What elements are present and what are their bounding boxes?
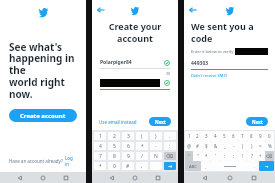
staticText: ! — [242, 153, 244, 159]
button[interactable]: - — [229, 141, 238, 151]
button[interactable]: * — [202, 151, 211, 161]
button[interactable]: Next — [149, 117, 171, 126]
button[interactable]: 5 — [108, 142, 120, 150]
button[interactable]: Back — [96, 5, 106, 15]
button[interactable]: Create account — [9, 109, 77, 122]
button[interactable]: Home — [227, 175, 233, 181]
button[interactable]: : — [164, 142, 176, 150]
button[interactable]: 4 — [211, 131, 220, 141]
button[interactable]: & — [211, 141, 220, 151]
button[interactable]: # — [193, 141, 202, 151]
button[interactable]: , — [136, 162, 148, 170]
button[interactable]: Home — [132, 175, 138, 181]
button[interactable]: Next — [246, 117, 268, 126]
button[interactable]: " — [193, 151, 202, 161]
button[interactable]: 9 — [256, 131, 265, 141]
button[interactable]: . — [164, 132, 176, 140]
button[interactable]: → — [164, 162, 176, 170]
staticText: . — [254, 164, 256, 169]
staticText: _ — [224, 143, 226, 149]
staticText: ) — [251, 143, 253, 149]
staticText: / — [141, 153, 143, 160]
button[interactable]: Recents — [155, 175, 161, 181]
staticText: ; — [233, 153, 235, 159]
button[interactable]: + — [256, 151, 265, 161]
button[interactable]: ( — [238, 141, 247, 151]
staticText: 6 — [127, 143, 130, 150]
staticText: Create account — [20, 112, 66, 120]
button[interactable]: 7 — [94, 152, 106, 160]
button[interactable]: 8 — [247, 131, 256, 141]
button[interactable]: ) — [247, 141, 256, 151]
staticText: 6 — [232, 133, 235, 139]
button[interactable]: 1 — [94, 132, 106, 140]
button[interactable]: Recents — [251, 175, 257, 181]
button[interactable]: ) — [150, 132, 162, 140]
button[interactable]: 1 — [185, 131, 193, 141]
button[interactable]: @ — [185, 141, 193, 151]
button[interactable]: * — [94, 162, 106, 170]
button[interactable]: 3 — [202, 131, 211, 141]
staticText: . — [169, 133, 171, 140]
staticText: 2 — [196, 133, 199, 139]
button[interactable]: 9 — [122, 152, 134, 160]
button[interactable]: = — [256, 141, 265, 151]
button[interactable]: 2 — [193, 131, 202, 141]
staticText: ? — [251, 153, 253, 159]
staticText: ⌃ — [187, 154, 191, 159]
button[interactable]: - — [150, 142, 162, 150]
button[interactable]: ⌫ — [164, 152, 176, 160]
staticText: Next — [155, 119, 166, 125]
button[interactable]: 2 — [108, 132, 120, 140]
button[interactable]: / — [136, 152, 148, 160]
button[interactable]: : — [220, 151, 229, 161]
button[interactable]: 3 — [122, 132, 134, 140]
button[interactable]: 6 — [229, 131, 238, 141]
staticText: % — [268, 143, 272, 149]
button[interactable]: 5 — [220, 131, 229, 141]
button[interactable]: → — [259, 161, 274, 171]
button[interactable]: ( — [136, 132, 148, 140]
staticText: 0 — [113, 163, 116, 170]
button[interactable]: $ — [202, 141, 211, 151]
button[interactable]: Recents — [63, 175, 69, 181]
button[interactable]: 7 — [238, 131, 247, 141]
button[interactable]: 8 — [108, 152, 120, 160]
button[interactable]: % — [265, 141, 274, 151]
button[interactable]: N — [150, 152, 162, 160]
staticText: 3 — [127, 133, 130, 140]
staticText: " — [197, 153, 199, 159]
button[interactable]: Back — [188, 5, 198, 15]
button[interactable]: Use email instead — [99, 119, 137, 125]
button[interactable]: ABC — [185, 161, 201, 171]
button[interactable]: , — [201, 161, 210, 171]
staticText: Create your account — [92, 20, 178, 44]
button[interactable]: _ — [220, 141, 229, 151]
button[interactable]: ⌫ — [265, 151, 274, 161]
staticText: ⌫ — [266, 154, 273, 159]
button[interactable]: Back — [109, 175, 115, 181]
button[interactable]: Back — [202, 175, 208, 181]
button[interactable]: Didn't receive SMS? — [191, 73, 228, 78]
button[interactable] — [210, 161, 250, 171]
button[interactable]: Home — [40, 175, 46, 181]
button[interactable]: 0 — [108, 162, 120, 170]
button[interactable]: ⌃ — [185, 151, 193, 161]
button[interactable]: 0 — [265, 131, 274, 141]
button[interactable]: 4 — [94, 142, 106, 150]
staticText: 0 — [268, 133, 271, 139]
button[interactable]: Back — [17, 175, 23, 181]
button[interactable]: ? — [247, 151, 256, 161]
button[interactable]: ' — [211, 151, 220, 161]
button[interactable]: # — [122, 162, 134, 170]
button[interactable]: Have an account already? — [9, 155, 77, 167]
staticText: * — [141, 143, 144, 150]
staticText: 5 — [113, 143, 116, 150]
button[interactable]: ! — [238, 151, 247, 161]
staticText: 4 — [99, 143, 102, 150]
button[interactable]: ; — [229, 151, 238, 161]
button[interactable]: 6 — [122, 142, 134, 150]
button[interactable]: * — [136, 142, 148, 150]
